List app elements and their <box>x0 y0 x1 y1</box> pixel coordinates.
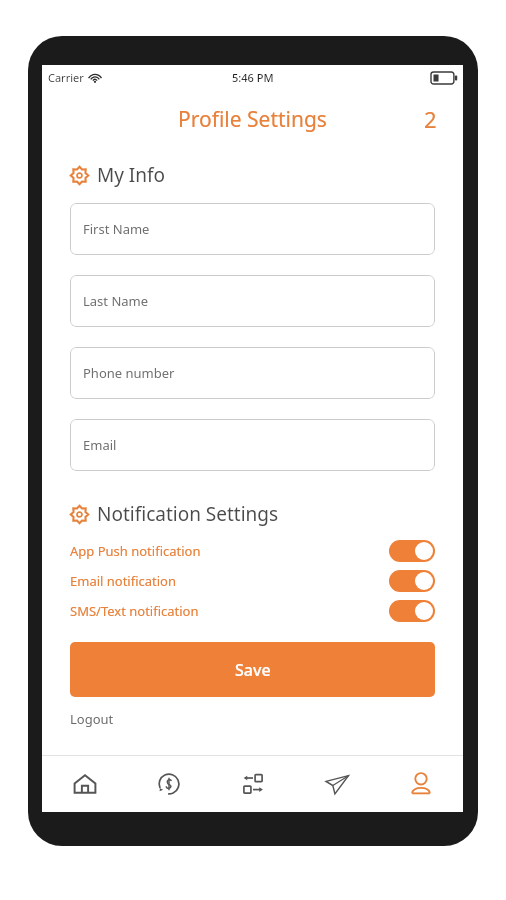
button[interactable]: Save <box>70 642 435 697</box>
button[interactable]: Home <box>42 756 127 812</box>
button[interactable]: Email notification <box>42 566 463 596</box>
staticText: Profile Settings <box>178 105 327 134</box>
staticText: Carrier <box>48 70 84 85</box>
staticText: Logout <box>70 710 114 728</box>
staticText: First Name <box>83 220 150 238</box>
staticText: App Push notification <box>70 542 389 560</box>
staticText: Save <box>235 659 271 681</box>
staticText: Phone number <box>83 364 175 382</box>
button[interactable]: Logout <box>70 710 114 728</box>
button[interactable]: Phone number <box>70 347 435 399</box>
staticText: Email <box>83 436 117 454</box>
staticText: My Info <box>97 162 166 188</box>
staticText: Notification Settings <box>97 501 279 527</box>
button[interactable]: Profile <box>379 756 463 812</box>
staticText: 5:46 PM <box>232 70 274 85</box>
staticText: Last Name <box>83 292 149 310</box>
button[interactable]: Send <box>295 756 379 812</box>
staticText: SMS/Text notification <box>70 602 389 620</box>
staticText: 2 <box>424 104 437 134</box>
button[interactable]: SMS/Text notification <box>42 596 463 626</box>
button[interactable]: Notifications: 2 <box>418 98 443 140</box>
button[interactable]: Email <box>70 419 435 471</box>
button[interactable]: Last Name <box>70 275 435 327</box>
staticText: Email notification <box>70 572 389 590</box>
button[interactable]: App Push notification <box>42 536 463 566</box>
button[interactable]: Transfer <box>211 756 295 812</box>
button[interactable]: Refund <box>127 756 211 812</box>
button[interactable]: First Name <box>70 203 435 255</box>
